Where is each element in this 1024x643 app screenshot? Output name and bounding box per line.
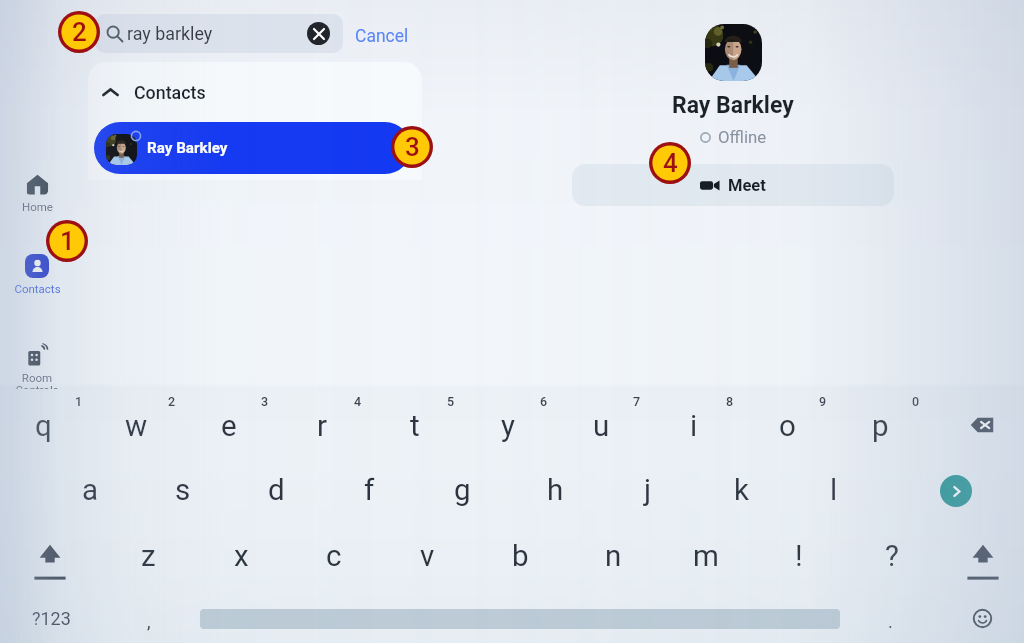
button[interactable]: o	[753, 398, 821, 454]
staticText: 0	[912, 394, 920, 409]
button[interactable]: ?123	[32, 608, 71, 629]
staticText: 4	[663, 148, 678, 178]
staticText: v	[420, 539, 435, 574]
staticText: n	[605, 539, 622, 574]
staticText: Cancel	[355, 26, 409, 47]
button[interactable]: s	[149, 462, 217, 518]
button[interactable]: !	[765, 528, 833, 584]
staticText: Ray Barkley	[147, 139, 228, 157]
staticText: 6	[540, 394, 548, 409]
button[interactable]: Meet	[572, 164, 894, 206]
staticText: 1	[60, 226, 75, 256]
button[interactable]: r	[288, 398, 356, 454]
button[interactable]: y	[474, 398, 542, 454]
button[interactable]: v	[393, 528, 461, 584]
staticText: Ray Barkley	[672, 92, 794, 119]
staticText: s	[175, 473, 191, 508]
staticText: u	[593, 409, 610, 444]
button[interactable]: Shift	[24, 528, 76, 584]
staticText: e	[221, 409, 237, 444]
button[interactable]: Emoji	[968, 604, 996, 632]
button[interactable]: Ray Barkley	[94, 122, 411, 174]
staticText: x	[234, 539, 249, 574]
button[interactable]: e	[195, 398, 263, 454]
staticText: 7	[633, 394, 641, 409]
button[interactable]: z	[114, 528, 182, 584]
button[interactable]: b	[486, 528, 554, 584]
staticText: b	[512, 539, 529, 574]
button[interactable]: x	[207, 528, 275, 584]
button[interactable]: .	[888, 611, 893, 632]
button[interactable]: ?	[858, 528, 926, 584]
staticText: k	[734, 473, 749, 508]
button[interactable]: c	[300, 528, 368, 584]
staticText: Contacts	[14, 282, 61, 295]
staticText: .	[888, 611, 893, 632]
staticText: g	[454, 473, 471, 508]
staticText: y	[501, 409, 515, 444]
button[interactable]: f	[335, 462, 403, 518]
staticText: 3	[405, 132, 420, 162]
staticText: 2	[72, 17, 87, 47]
button[interactable]: Cancel	[355, 26, 409, 47]
staticText: ?	[885, 539, 899, 574]
staticText: Home	[22, 200, 53, 213]
staticText: a	[82, 473, 99, 508]
staticText: Meet	[728, 176, 766, 195]
staticText: ray barkley	[127, 23, 213, 44]
button[interactable]: ray barkley	[95, 14, 343, 53]
staticText: 9	[819, 394, 827, 409]
button[interactable]: j	[614, 462, 682, 518]
staticText: 5	[447, 394, 455, 409]
staticText: ?123	[32, 608, 71, 629]
button[interactable]: Home	[0, 172, 74, 213]
staticText: h	[547, 473, 564, 508]
staticText: m	[693, 539, 719, 574]
staticText: z	[141, 539, 156, 574]
staticText: d	[268, 473, 285, 508]
button[interactable]: d	[242, 462, 310, 518]
button[interactable]: Clear search	[307, 22, 330, 45]
button[interactable]: Shift	[957, 528, 1009, 584]
button[interactable]: p	[846, 398, 914, 454]
staticText: t	[410, 409, 420, 444]
staticText: 4	[354, 394, 362, 409]
staticText: l	[830, 473, 838, 508]
staticText: Contacts	[134, 82, 206, 103]
button[interactable]: q	[9, 398, 77, 454]
staticText: 1	[75, 394, 83, 409]
staticText: f	[364, 473, 375, 508]
button[interactable]: k	[707, 462, 775, 518]
button[interactable]: u	[567, 398, 635, 454]
staticText: Offline	[718, 127, 767, 147]
staticText: j	[644, 473, 652, 508]
button[interactable]: l	[800, 462, 868, 518]
staticText: p	[872, 409, 889, 444]
staticText: q	[35, 409, 52, 444]
button[interactable]: ,	[147, 611, 151, 632]
staticText: Room Controls	[15, 371, 59, 397]
staticText: ,	[147, 611, 151, 632]
staticText: 3	[261, 394, 269, 409]
staticText: w	[125, 409, 148, 444]
button[interactable]: a	[56, 462, 124, 518]
button[interactable]: i	[660, 398, 728, 454]
button[interactable]: Room Controls	[0, 343, 74, 397]
button[interactable]: m	[672, 528, 740, 584]
button[interactable]: h	[521, 462, 589, 518]
button[interactable]: w	[102, 398, 170, 454]
button[interactable]: n	[579, 528, 647, 584]
button[interactable]: g	[428, 462, 496, 518]
staticText: c	[326, 539, 342, 574]
button[interactable]: Enter	[924, 459, 988, 523]
staticText: 8	[726, 394, 734, 409]
staticText: o	[779, 409, 796, 444]
staticText: r	[317, 409, 327, 444]
staticText: 2	[168, 394, 176, 409]
button[interactable]: Contacts	[102, 82, 206, 103]
staticText: !	[795, 539, 803, 574]
button[interactable]: Backspace	[958, 401, 1006, 449]
button[interactable]: t	[381, 398, 449, 454]
button[interactable]: Contacts	[0, 254, 74, 295]
